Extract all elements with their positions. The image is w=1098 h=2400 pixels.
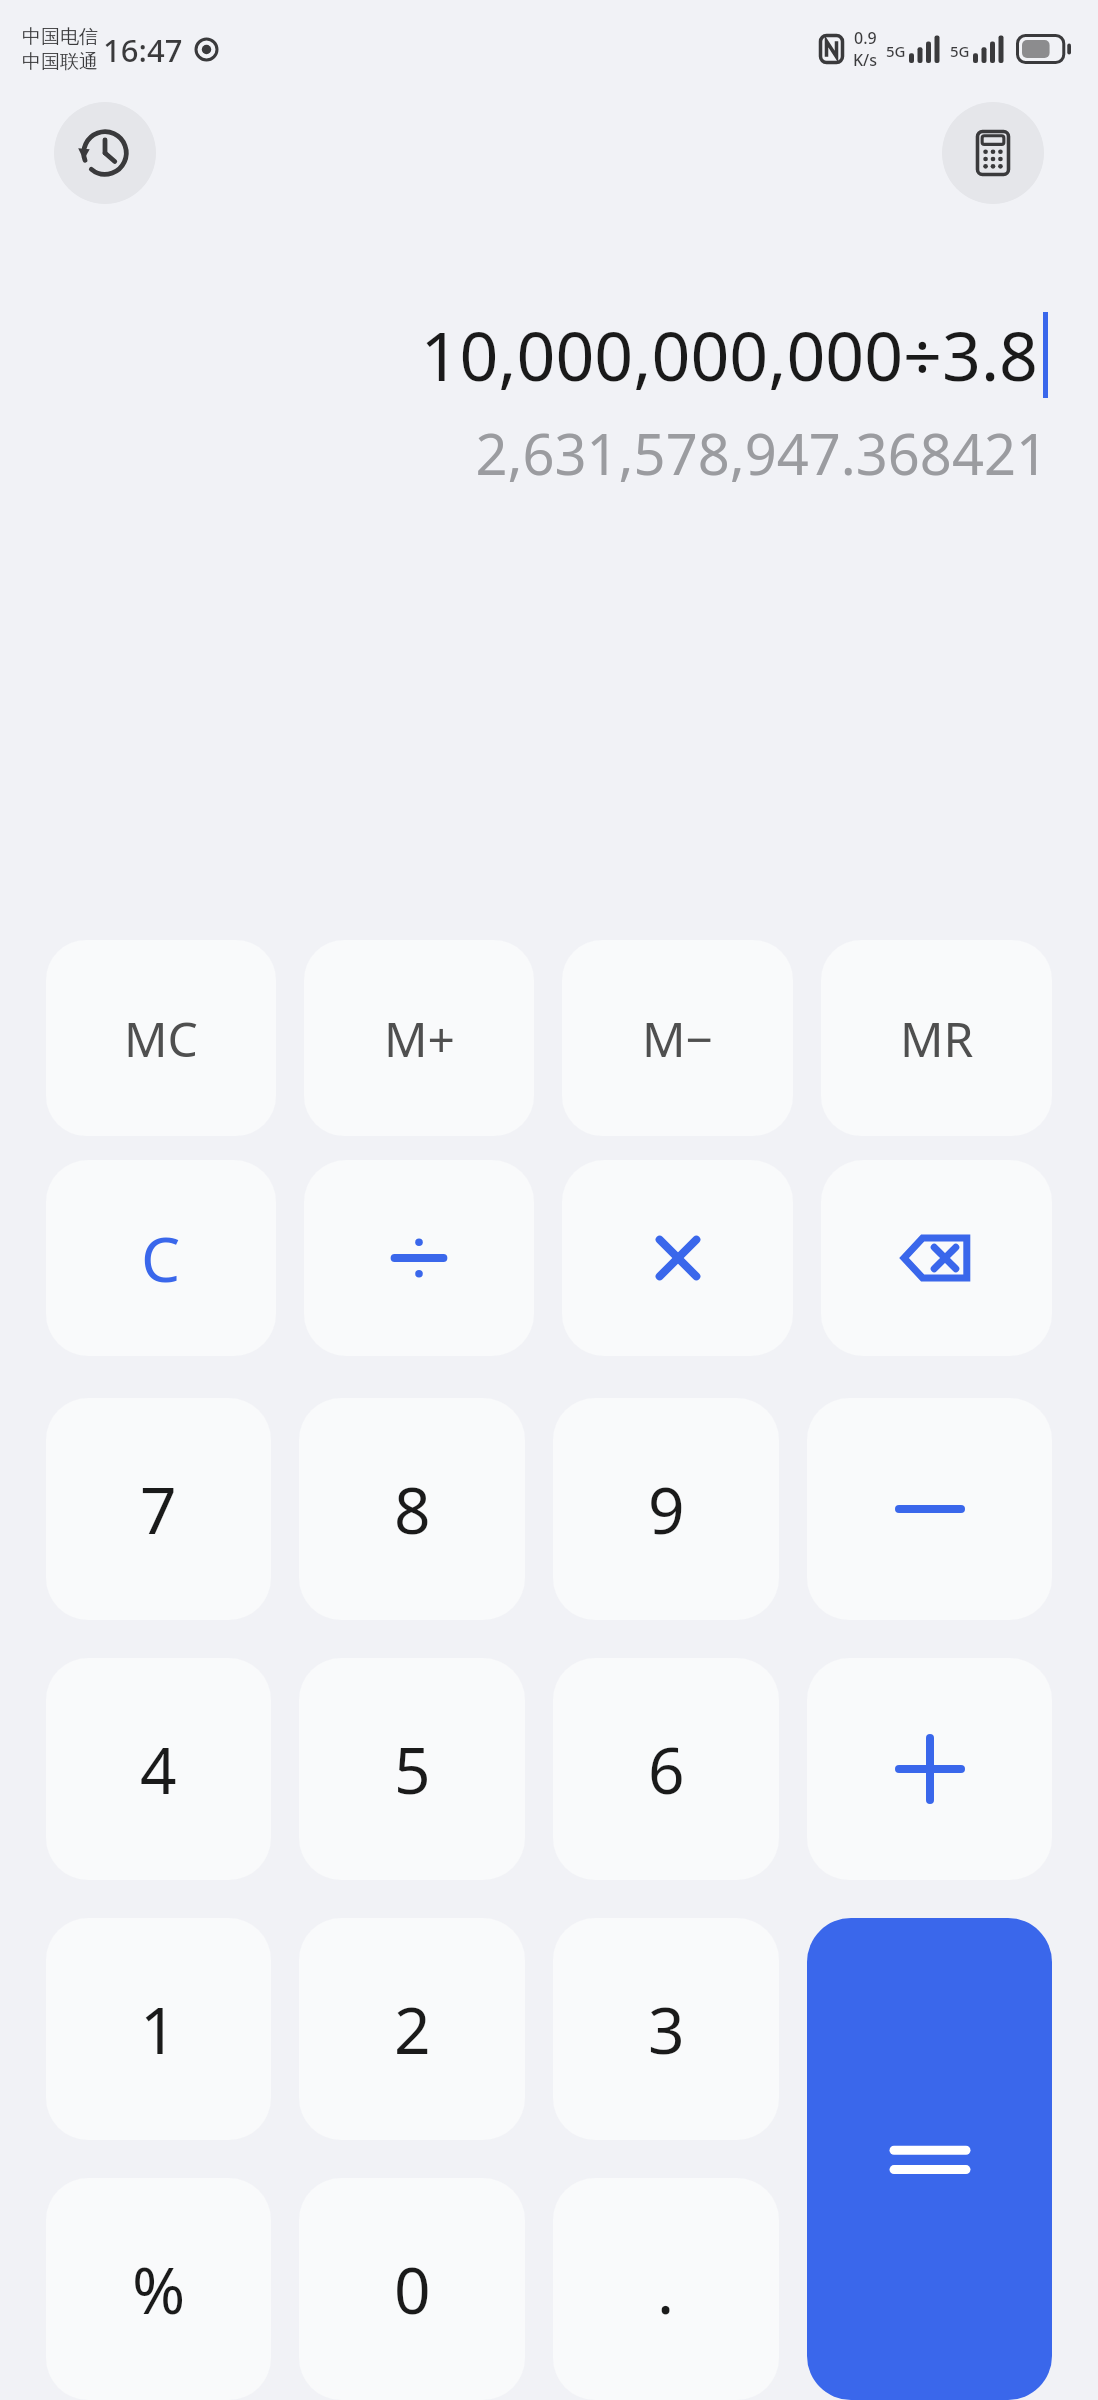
button[interactable]: . xyxy=(553,2178,779,2400)
button[interactable]: % xyxy=(46,2178,271,2400)
staticText: 中国联通 xyxy=(22,50,98,74)
button[interactable]: MR xyxy=(821,940,1052,1136)
button[interactable]: 9 xyxy=(553,1398,779,1620)
button[interactable]: MC xyxy=(46,940,276,1136)
staticText: MR xyxy=(900,1006,974,1071)
button[interactable]: Calculator mode xyxy=(942,102,1044,204)
staticText: 4 xyxy=(140,1726,177,1813)
staticText: 0 xyxy=(394,2246,431,2333)
button[interactable]: 4 xyxy=(46,1658,271,1880)
button[interactable]: 6 xyxy=(553,1658,779,1880)
staticText: 2,631,578,947.368421 xyxy=(475,415,1048,491)
button[interactable]: Plus xyxy=(807,1658,1052,1880)
staticText: 7 xyxy=(140,1466,177,1553)
staticText: M+ xyxy=(384,1006,455,1071)
staticText: 16:47 xyxy=(103,29,183,71)
button[interactable]: History xyxy=(54,102,156,204)
staticText: . xyxy=(657,2246,675,2333)
button[interactable]: Equals xyxy=(807,1918,1052,2400)
staticText: 2 xyxy=(394,1986,431,2073)
button[interactable]: 0 xyxy=(299,2178,525,2400)
staticText: 6 xyxy=(648,1726,685,1813)
button[interactable]: Minus xyxy=(807,1398,1052,1620)
button[interactable]: M− xyxy=(562,940,793,1136)
button[interactable]: Multiply xyxy=(562,1160,793,1356)
staticText: 0.9 xyxy=(854,27,877,49)
staticText: 8 xyxy=(394,1466,431,1553)
button[interactable]: 2 xyxy=(299,1918,525,2140)
button[interactable]: M+ xyxy=(304,940,534,1136)
button[interactable]: Backspace xyxy=(821,1160,1052,1356)
staticText: 3 xyxy=(648,1986,685,2073)
staticText: MC xyxy=(124,1006,198,1071)
button[interactable]: 7 xyxy=(46,1398,271,1620)
staticText: K/s xyxy=(853,49,878,71)
staticText: 10,000,000,000÷3.8 xyxy=(420,308,1038,401)
staticText: C xyxy=(141,1216,181,1300)
button[interactable]: 3 xyxy=(553,1918,779,2140)
button[interactable]: Divide xyxy=(304,1160,534,1356)
button[interactable]: C xyxy=(46,1160,276,1356)
staticText: M− xyxy=(642,1006,713,1071)
staticText: 5G xyxy=(886,41,906,61)
button[interactable]: 8 xyxy=(299,1398,525,1620)
staticText: 5G xyxy=(950,41,970,61)
staticText: 5 xyxy=(394,1726,431,1813)
staticText: 1 xyxy=(140,1986,177,2073)
staticText: 9 xyxy=(648,1466,685,1553)
staticText: % xyxy=(132,2246,186,2333)
button[interactable]: 5 xyxy=(299,1658,525,1880)
button[interactable]: 1 xyxy=(46,1918,271,2140)
staticText: 中国电信 xyxy=(22,25,98,49)
